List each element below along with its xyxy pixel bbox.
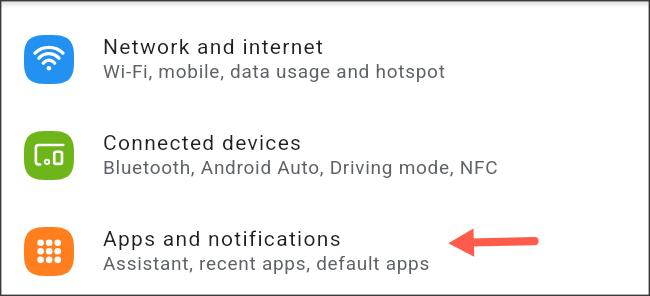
other: Network and internet xyxy=(24,35,74,84)
button[interactable] xyxy=(0,205,650,296)
staticText: Connected devices xyxy=(103,131,303,156)
staticText: Assistant, recent apps, default apps xyxy=(103,252,431,274)
staticText: Apps and notifications xyxy=(103,227,342,252)
button[interactable] xyxy=(0,13,650,109)
staticText: Bluetooth, Android Auto, Driving mode, N… xyxy=(103,156,499,178)
staticText: Network and internet xyxy=(103,35,325,60)
button[interactable] xyxy=(0,109,650,205)
staticText: Wi-Fi, mobile, data usage and hotspot xyxy=(103,60,446,82)
other: Connected devices xyxy=(24,131,74,180)
other: Apps and notifications xyxy=(24,227,74,276)
